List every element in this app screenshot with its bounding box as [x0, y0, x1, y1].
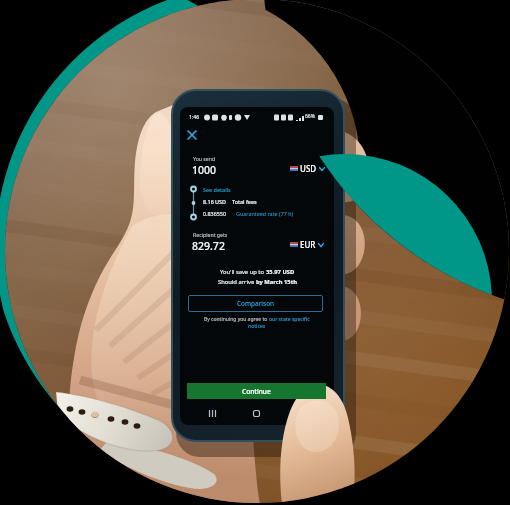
button[interactable]: Recents	[205, 406, 219, 420]
staticText: You send	[193, 155, 216, 162]
staticText: USD	[300, 163, 317, 174]
button[interactable]: Close	[185, 128, 198, 141]
staticText: 829.72	[192, 239, 225, 253]
button[interactable]: Comparison	[188, 295, 323, 312]
staticText: Should arrive	[218, 278, 256, 286]
staticText: Continue	[242, 387, 271, 396]
button[interactable]: EUR	[290, 239, 324, 250]
button[interactable]: USD	[290, 163, 325, 174]
staticText: Total fees	[232, 198, 257, 205]
staticText: By continuing you agree to	[204, 316, 269, 323]
button[interactable]: Back	[293, 406, 307, 420]
staticText: 8.16 USD	[203, 198, 227, 205]
staticText: our state specific	[269, 316, 310, 323]
staticText: 1000	[192, 163, 217, 177]
staticText: 35.97 USD	[266, 268, 295, 276]
button[interactable]: By continuing you agree to	[186, 316, 328, 330]
staticText: Comparison	[237, 299, 275, 308]
staticText: by March 15th	[256, 278, 297, 286]
staticText: You'll save up to	[220, 268, 266, 276]
staticText: EUR	[300, 239, 316, 250]
button[interactable]: Home	[249, 406, 263, 420]
staticText: Recipient gets	[193, 231, 228, 238]
staticText: notices	[248, 323, 266, 330]
button[interactable]: Continue	[187, 383, 326, 399]
staticText: 66%	[305, 113, 315, 120]
staticText: Guaranteed rate (77 h)	[236, 210, 294, 217]
staticText: 0.836550	[203, 210, 227, 217]
staticText: 1:46	[189, 113, 200, 120]
button[interactable]: See details	[203, 186, 231, 193]
